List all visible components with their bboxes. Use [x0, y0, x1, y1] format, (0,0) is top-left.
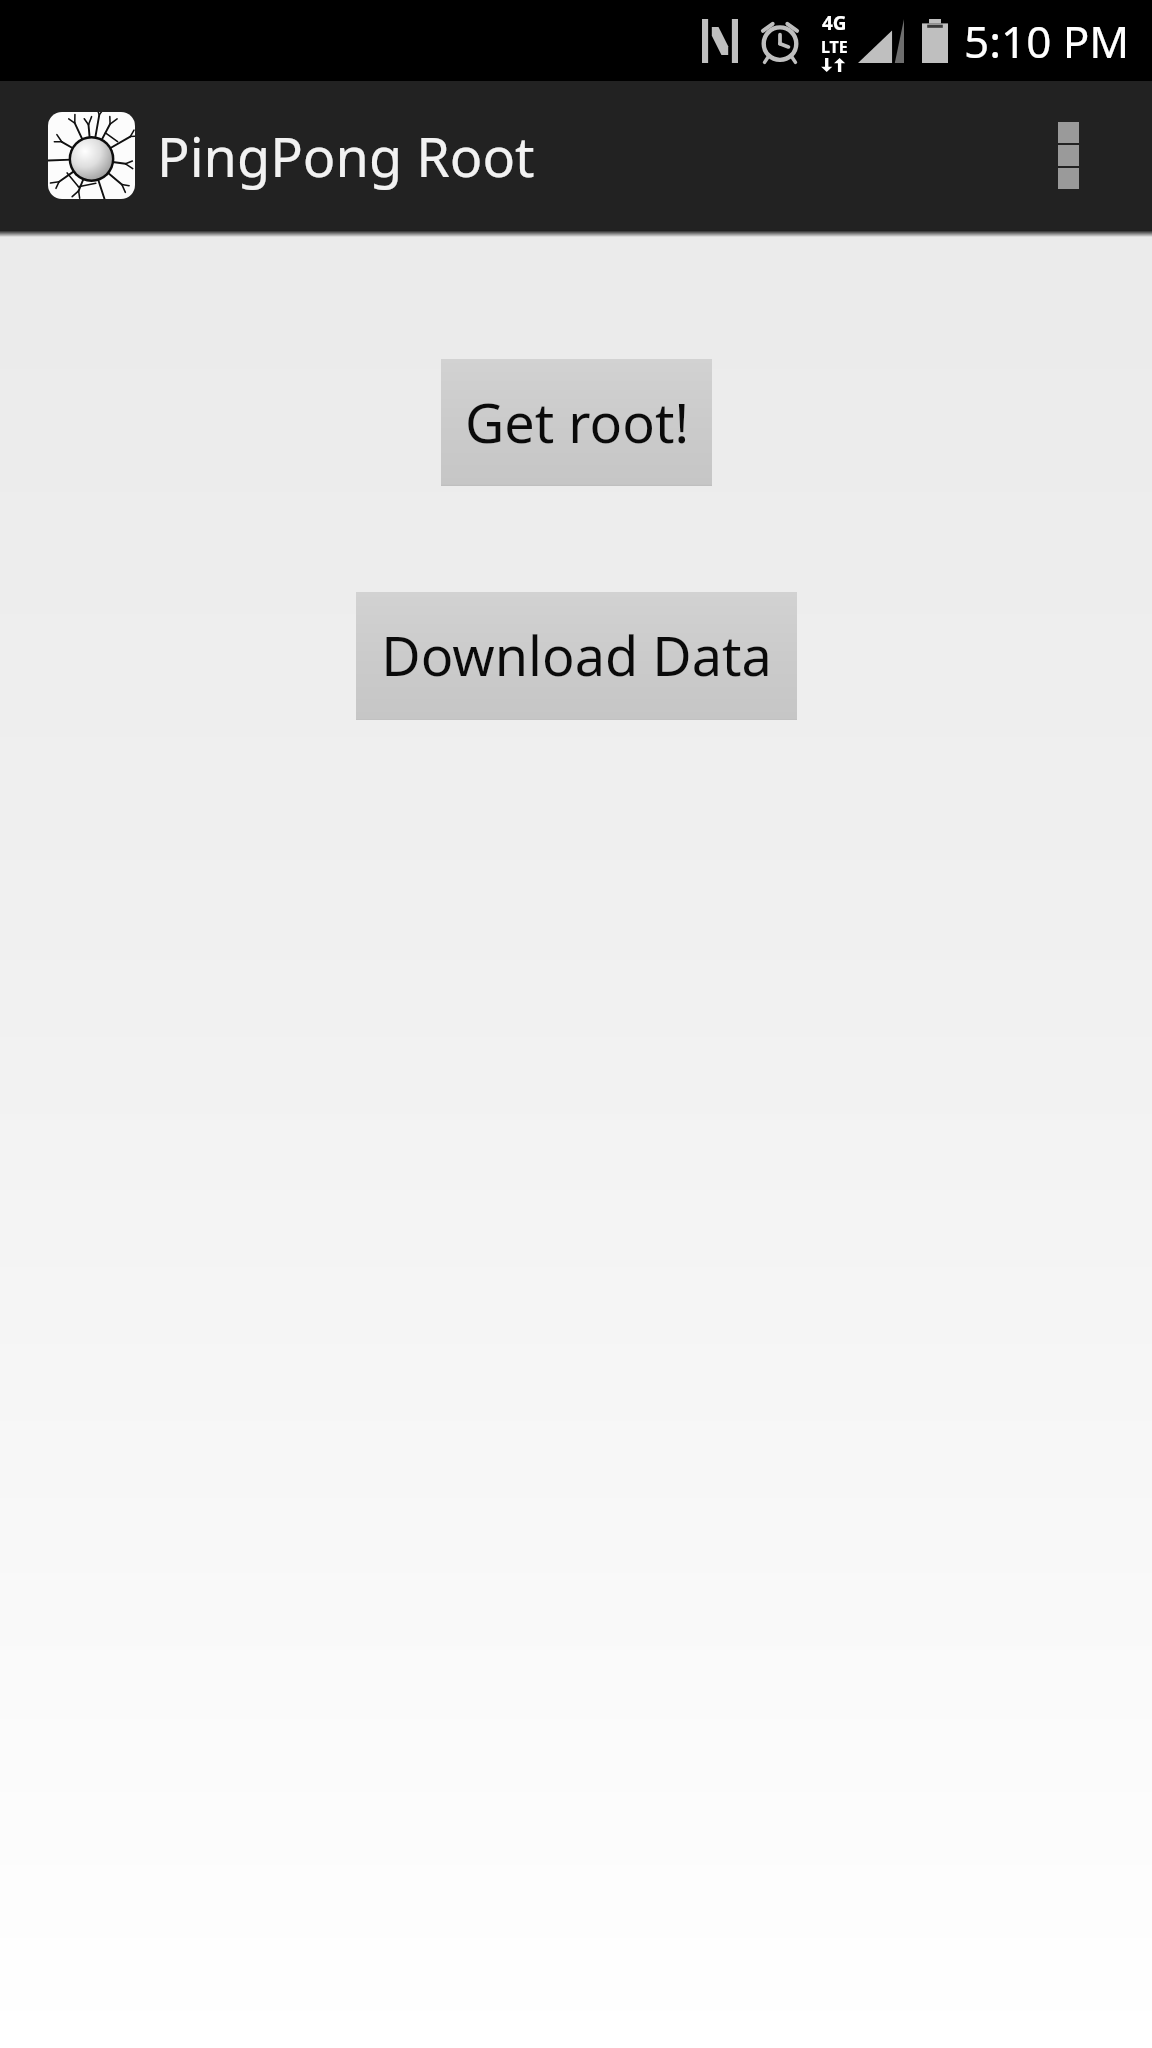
staticText: PingPong Root [157, 119, 535, 193]
staticText: Get root! [465, 385, 689, 459]
button[interactable]: More options [1024, 81, 1112, 230]
button[interactable]: Download Data [356, 592, 797, 718]
staticText: Download Data [381, 618, 772, 692]
staticText: LTE [821, 36, 848, 58]
button[interactable]: Get root! [441, 359, 712, 484]
staticText: 5:10 PM [964, 11, 1130, 71]
staticText: 4G [822, 10, 847, 36]
